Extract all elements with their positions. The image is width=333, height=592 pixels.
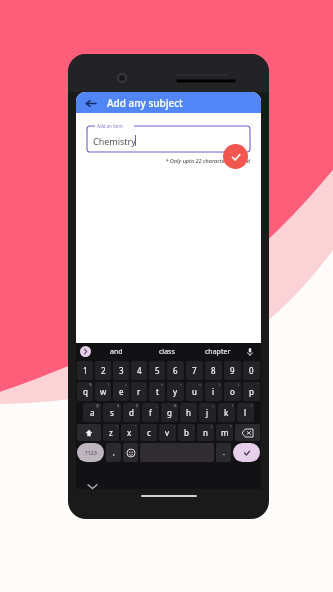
button[interactable]: Emoji — [123, 443, 138, 462]
staticText: 0 — [249, 365, 254, 376]
staticText: Add an item — [97, 123, 123, 129]
staticText: _ — [156, 403, 158, 408]
staticText: c — [147, 427, 151, 438]
button[interactable]: 7 — [186, 361, 203, 380]
button[interactable]: 5 — [149, 361, 165, 380]
button[interactable]: a — [83, 403, 101, 422]
button[interactable]: 9 — [224, 361, 241, 380]
button[interactable]: o — [224, 382, 241, 401]
staticText: + — [125, 382, 128, 387]
button[interactable]: k — [218, 403, 235, 422]
staticText: b — [184, 427, 189, 438]
button[interactable]: w — [95, 382, 111, 401]
button[interactable]: . — [216, 443, 231, 462]
button[interactable]: Voice input — [243, 343, 257, 360]
button[interactable]: s — [103, 403, 121, 422]
button[interactable]: Confirm — [223, 144, 248, 169]
button[interactable]: c — [140, 424, 157, 441]
button[interactable]: class — [141, 343, 192, 360]
other: Hide keyboard — [88, 482, 97, 491]
button[interactable]: 0 — [243, 361, 260, 380]
staticText: 8 — [211, 365, 216, 376]
staticText: : — [174, 424, 175, 429]
staticText: x — [127, 427, 132, 438]
button[interactable]: u — [186, 382, 203, 401]
button[interactable]: Shift — [77, 424, 101, 441]
button[interactable]: z — [103, 424, 119, 441]
staticText: & — [174, 403, 177, 408]
staticText: , — [113, 448, 115, 458]
button[interactable]: , — [106, 443, 121, 462]
staticText: u — [192, 386, 197, 397]
button[interactable]: g — [161, 403, 178, 422]
button[interactable]: m — [216, 424, 233, 441]
button[interactable]: Enter — [233, 443, 260, 462]
staticText: o — [230, 386, 235, 397]
button[interactable]: x — [121, 424, 138, 441]
button[interactable]: v — [159, 424, 176, 441]
staticText: ) — [251, 403, 253, 408]
button[interactable]: n — [197, 424, 214, 441]
button[interactable]: chapter — [192, 343, 243, 360]
button[interactable]: t — [149, 382, 165, 401]
button[interactable]: ?123 — [77, 443, 104, 462]
button[interactable]: Back — [76, 92, 261, 113]
staticText: ( — [219, 382, 221, 387]
button[interactable]: i — [205, 382, 222, 401]
staticText: n — [203, 427, 208, 438]
staticText: 2 — [101, 365, 106, 376]
button[interactable]: and — [91, 343, 141, 360]
staticText: . — [223, 448, 225, 458]
staticText: ! — [117, 424, 118, 429]
button[interactable]: 8 — [205, 361, 222, 380]
staticText: h — [186, 407, 191, 418]
button[interactable]: Backspace — [235, 424, 260, 441]
button[interactable]: e — [113, 382, 129, 401]
button[interactable]: 1 — [77, 361, 93, 380]
staticText: class — [159, 347, 175, 357]
staticText: @ — [96, 403, 100, 408]
button[interactable] — [87, 126, 250, 152]
staticText: ' — [155, 424, 156, 429]
staticText: × — [161, 382, 164, 387]
staticText: = — [199, 382, 202, 387]
button[interactable]: q — [77, 382, 93, 401]
button[interactable]: h — [180, 403, 197, 422]
staticText: * Only upto 22 characters allowed — [87, 157, 250, 164]
button[interactable]: j — [199, 403, 216, 422]
staticText: ( — [232, 403, 234, 408]
staticText: d — [129, 407, 134, 418]
button[interactable]: f — [142, 403, 159, 422]
staticText: a — [90, 407, 95, 418]
staticText: s — [110, 407, 114, 418]
staticText: l — [244, 407, 247, 418]
staticText: chapter — [205, 347, 231, 357]
button[interactable]: d — [123, 403, 140, 422]
button[interactable]: p — [243, 382, 260, 401]
button[interactable]: 6 — [167, 361, 184, 380]
staticText: q — [83, 386, 88, 397]
button[interactable]: 3 — [113, 361, 129, 380]
staticText: t — [156, 386, 159, 397]
button[interactable]: l — [237, 403, 254, 422]
button[interactable]: 2 — [95, 361, 111, 380]
staticText: f — [149, 407, 152, 418]
button[interactable]: b — [178, 424, 195, 441]
staticText: 6 — [173, 365, 178, 376]
button[interactable]: y — [167, 382, 184, 401]
staticText: 7 — [192, 365, 197, 376]
button[interactable]: Back — [82, 95, 98, 111]
staticText: + — [212, 403, 215, 408]
staticText: - — [194, 403, 196, 408]
staticText: ? — [230, 424, 232, 429]
staticText: ?123 — [85, 449, 97, 456]
staticText: ) — [238, 382, 240, 387]
button[interactable]: r — [131, 382, 147, 401]
staticText: v — [165, 427, 170, 438]
staticText: e — [119, 386, 124, 397]
staticText: p — [249, 386, 254, 397]
button[interactable]: Expand — [80, 346, 91, 357]
button[interactable]: 4 — [131, 361, 147, 380]
staticText: 5 — [155, 365, 160, 376]
